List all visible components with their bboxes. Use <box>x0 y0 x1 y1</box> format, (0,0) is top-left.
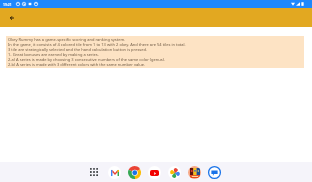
staticText: 1- Great bonuses are earned by making a … <box>8 52 99 57</box>
button[interactable]: Okey Rummy <box>184 162 204 182</box>
button[interactable]: Gmail <box>104 162 124 182</box>
staticText: Okey Rummy has a game-specific scoring a… <box>8 37 126 42</box>
staticText: 2-a) A series is made by choosing 3 cons… <box>8 57 165 62</box>
staticText: 3 tile are strategically selected and th… <box>8 47 148 52</box>
button[interactable]: Google Photos <box>164 162 184 182</box>
button[interactable]: Chrome <box>124 162 144 182</box>
staticText: 19:21 <box>3 2 12 7</box>
button[interactable]: All apps <box>84 162 104 182</box>
button[interactable]: Messages <box>204 162 224 182</box>
button[interactable]: Back <box>5 11 18 24</box>
button[interactable]: YouTube <box>144 162 164 182</box>
staticText: 2-b) A series is made with 3 different c… <box>8 62 146 67</box>
staticText: In the game, it consists of 4 colored ti… <box>8 42 186 47</box>
